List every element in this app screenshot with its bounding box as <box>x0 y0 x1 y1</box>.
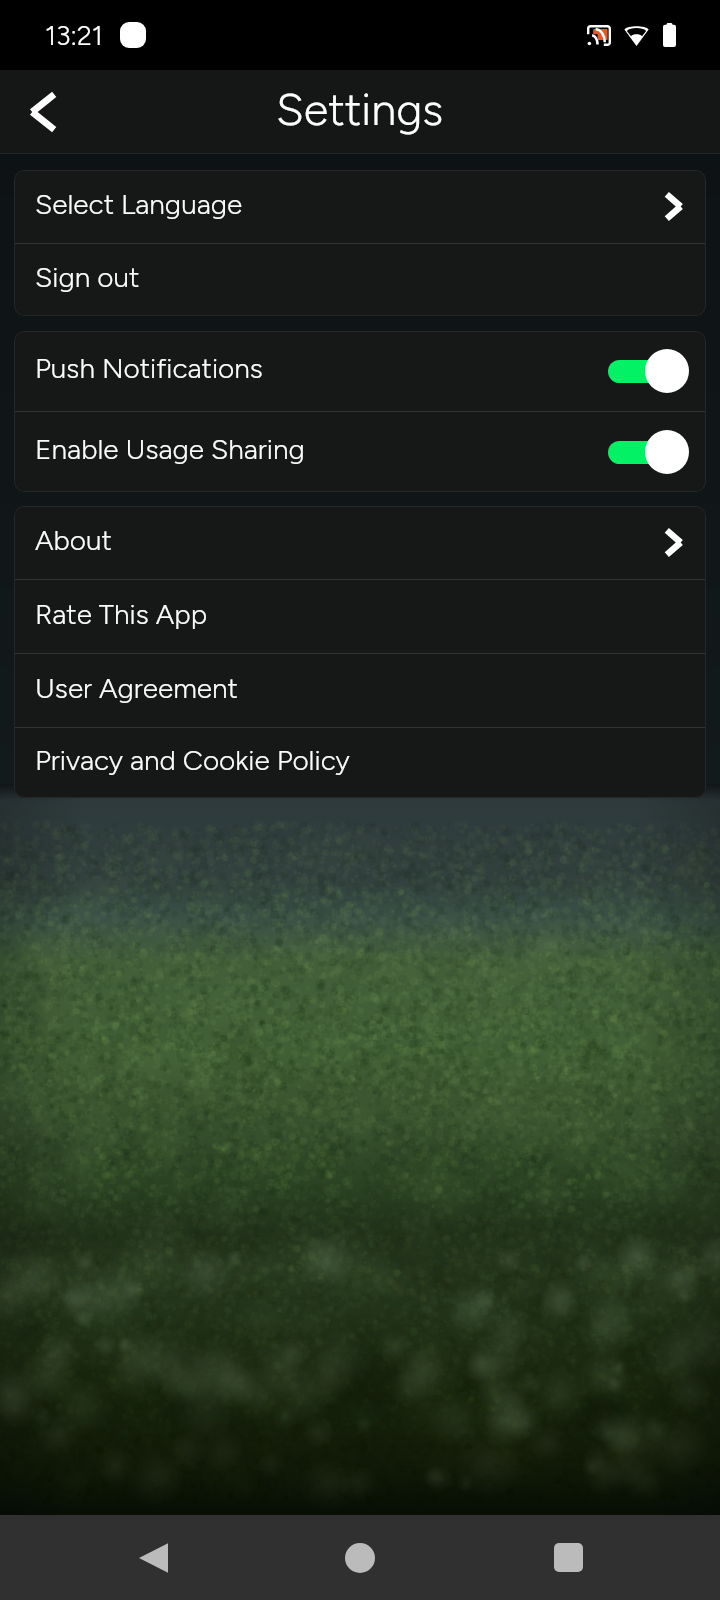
button[interactable]: Back <box>113 1515 193 1600</box>
staticText: User Agreement <box>35 671 238 705</box>
staticText: Sign out <box>35 260 140 294</box>
button[interactable]: Privacy and Cookie Policy <box>14 728 706 798</box>
button[interactable]: Push Notifications <box>14 331 706 411</box>
staticText: Enable Usage Sharing <box>35 432 305 466</box>
staticText: Settings <box>276 82 444 136</box>
button[interactable]: Sign out <box>14 244 706 316</box>
button[interactable]: Rate This App <box>14 580 706 653</box>
button[interactable]: Recent apps <box>528 1515 608 1600</box>
staticText: 13:21 <box>45 19 103 51</box>
button[interactable]: Enable Usage Sharing <box>14 412 706 492</box>
staticText: Push Notifications <box>35 351 263 385</box>
staticText: About <box>35 523 112 557</box>
staticText: Rate This App <box>35 597 208 631</box>
button[interactable]: Back <box>0 70 84 154</box>
button[interactable]: Toggle Push Notifications <box>608 344 690 398</box>
staticText: Privacy and Cookie Policy <box>35 743 350 777</box>
button[interactable]: Toggle Enable Usage Sharing <box>608 425 690 479</box>
button[interactable]: Home <box>320 1515 400 1600</box>
button[interactable]: About <box>14 506 706 579</box>
button[interactable]: Select Language <box>14 170 706 243</box>
button[interactable]: User Agreement <box>14 654 706 727</box>
staticText: Select Language <box>35 187 243 221</box>
